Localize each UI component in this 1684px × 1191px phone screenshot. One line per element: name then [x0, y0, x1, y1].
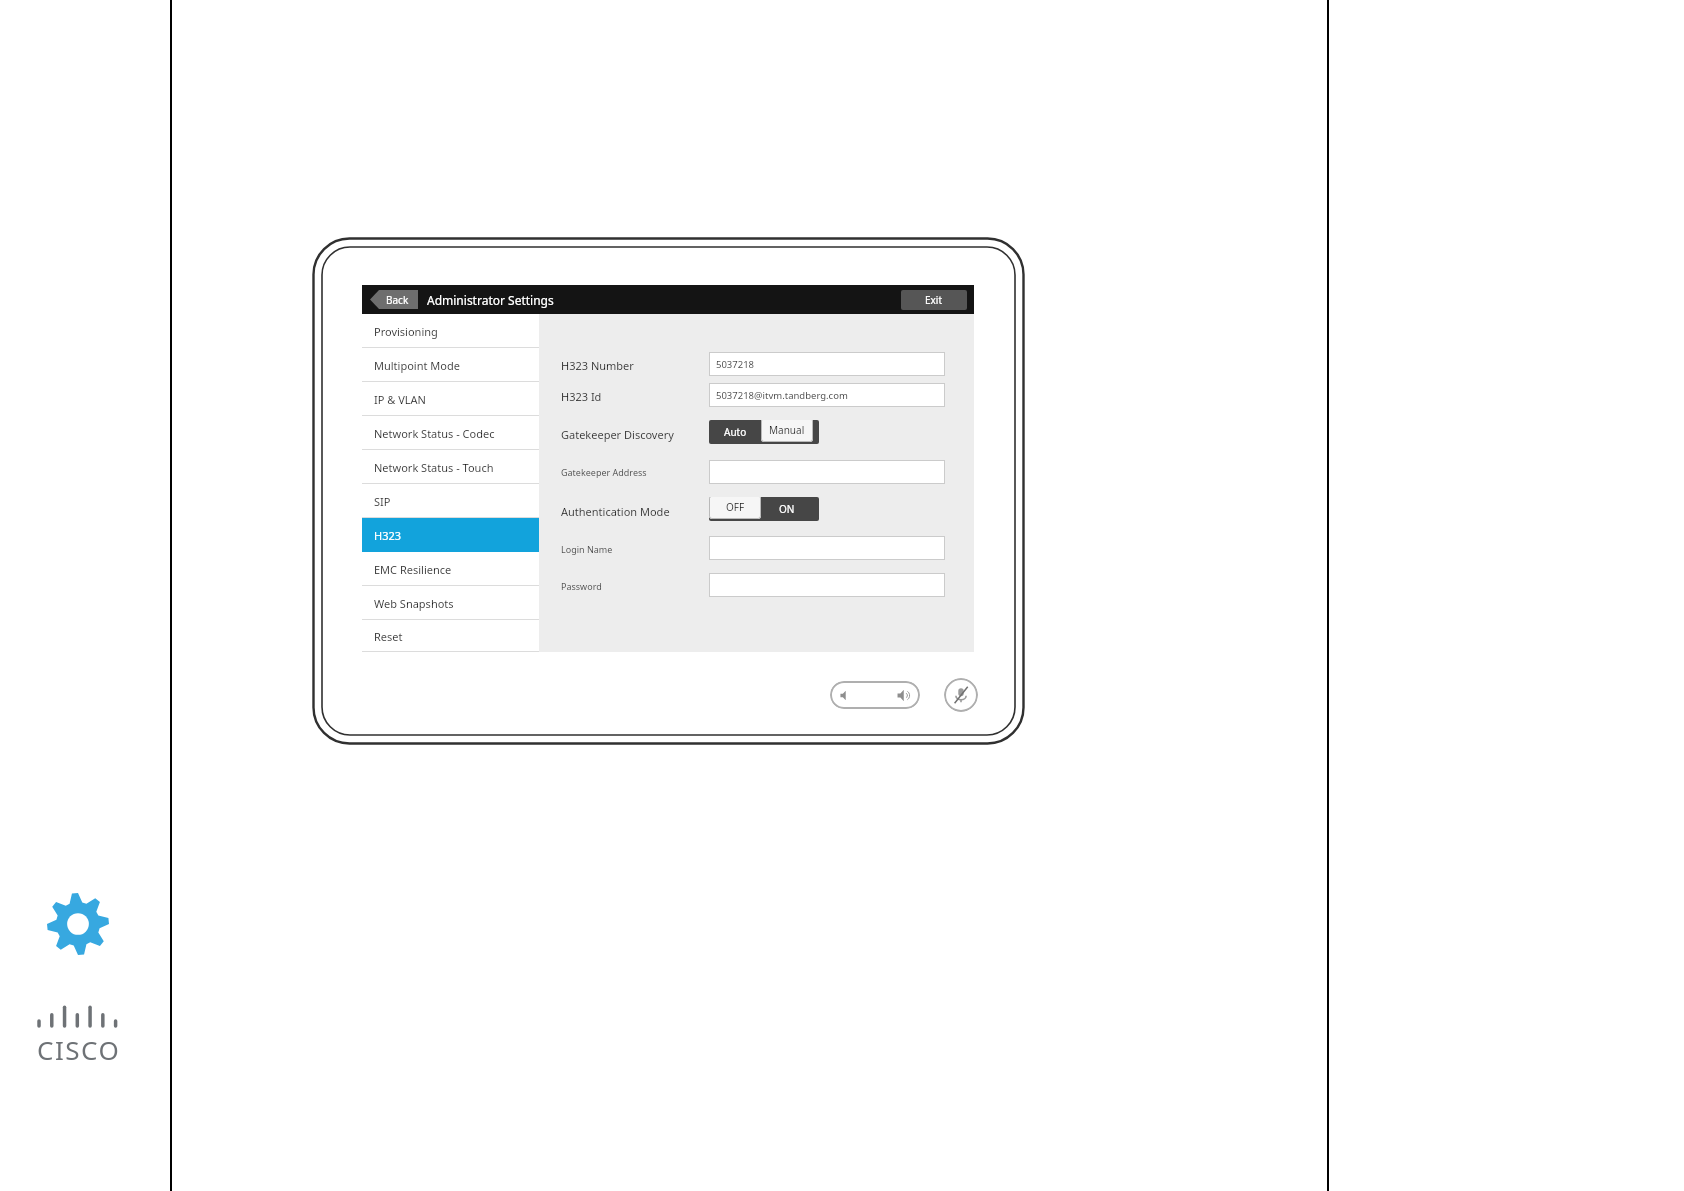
staticText: Provisioning	[374, 324, 438, 339]
button[interactable]: Network Status - Codec	[362, 416, 539, 450]
staticText: IP & VLAN	[374, 392, 426, 407]
staticText: Network Status - Touch	[374, 460, 494, 475]
staticText: Back	[386, 293, 409, 307]
button[interactable]: Settings	[47, 893, 109, 955]
staticText: OFF	[726, 500, 745, 514]
staticText: Gatekeeper Discovery	[561, 427, 674, 442]
button[interactable]: 5037218	[709, 352, 945, 376]
button[interactable]: Manual	[761, 420, 813, 442]
button[interactable]: IP & VLAN	[362, 382, 539, 416]
staticText: Password	[561, 580, 602, 592]
staticText: Multipoint Mode	[374, 358, 460, 373]
button[interactable]: Exit	[901, 290, 967, 310]
staticText: SIP	[374, 494, 391, 509]
staticText: H323	[374, 528, 402, 543]
button[interactable]: H323	[362, 518, 539, 552]
button[interactable]: Provisioning	[362, 314, 539, 348]
staticText: Authentication Mode	[561, 504, 670, 519]
button[interactable]: 5037218@itvm.tandberg.com	[709, 383, 945, 407]
button[interactable]: Mute microphone	[944, 678, 978, 712]
staticText: EMC Resilience	[374, 562, 452, 577]
staticText: CISCO	[37, 1032, 121, 1067]
staticText: Exit	[925, 293, 943, 307]
button[interactable]: ON	[761, 497, 813, 521]
button[interactable]: Back	[370, 290, 418, 309]
button[interactable]: SIP	[362, 484, 539, 518]
button[interactable]: Volume	[830, 681, 920, 709]
staticText: Reset	[374, 629, 403, 644]
staticText: Administrator Settings	[427, 292, 554, 308]
staticText: Network Status - Codec	[374, 426, 495, 441]
button[interactable]	[709, 460, 945, 484]
staticText: Manual	[769, 423, 805, 437]
button[interactable]: Web Snapshots	[362, 586, 539, 620]
staticText: 5037218	[716, 358, 755, 371]
button[interactable]: Multipoint Mode	[362, 348, 539, 382]
button[interactable]: EMC Resilience	[362, 552, 539, 586]
button[interactable]	[709, 536, 945, 560]
staticText: Gatekeeper Address	[561, 466, 647, 478]
button[interactable]: Auto	[709, 420, 761, 444]
staticText: H323 Number	[561, 358, 634, 373]
button[interactable]: OFF	[709, 497, 761, 519]
staticText: Login Name	[561, 543, 613, 555]
button[interactable]: Network Status - Touch	[362, 450, 539, 484]
staticText: H323 Id	[561, 389, 602, 404]
staticText: 5037218@itvm.tandberg.com	[716, 389, 848, 402]
button[interactable]: Reset	[362, 620, 539, 652]
staticText: Web Snapshots	[374, 596, 454, 611]
staticText: ON	[779, 502, 795, 516]
staticText: Auto	[724, 425, 747, 439]
button[interactable]	[709, 573, 945, 597]
